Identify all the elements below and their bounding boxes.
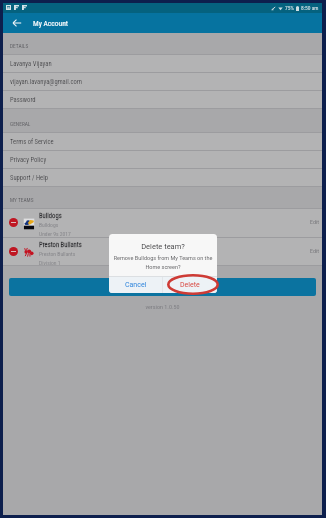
staticText: Preston Bullants <box>39 251 76 258</box>
staticText: Remove Bulldogs from My Teams on the Hom… <box>112 255 214 270</box>
button[interactable]: Privacy Policy <box>3 151 322 169</box>
button[interactable]: Remove team <box>9 247 18 256</box>
staticText: 75% <box>285 5 294 11</box>
staticText: Cancel <box>125 281 147 289</box>
staticText: DETAILS <box>10 43 29 49</box>
staticText: Division 1 <box>39 260 61 266</box>
staticText: Terms of Service <box>10 138 54 146</box>
staticText: Privacy Policy <box>10 156 47 164</box>
button[interactable]: Back <box>9 15 25 31</box>
button[interactable]: Remove team <box>3 209 322 238</box>
staticText: Edit <box>310 218 320 225</box>
staticText: Save <box>156 283 170 291</box>
staticText: Delete team? <box>109 242 217 251</box>
button[interactable]: Terms of Service <box>3 133 322 151</box>
staticText: Preston Bullants <box>39 241 82 249</box>
button[interactable]: Remove team <box>9 218 18 227</box>
button[interactable]: Remove team <box>3 238 322 266</box>
staticText: Lavanya Vijayan <box>10 60 52 68</box>
button[interactable]: Delete <box>163 277 217 293</box>
staticText: Under 9s 2017 <box>39 231 71 238</box>
staticText: Edit <box>310 247 320 254</box>
button[interactable]: vijayan.lavanya@gmail.com <box>3 73 322 91</box>
staticText: Bulldogs <box>39 222 59 229</box>
staticText: Delete <box>180 281 200 289</box>
staticText: 8:50 am <box>301 5 319 11</box>
button[interactable]: Save <box>9 278 316 296</box>
staticText: MY TEAMS <box>10 197 34 203</box>
staticText: vijayan.lavanya@gmail.com <box>10 78 82 86</box>
button[interactable]: Cancel <box>109 277 162 293</box>
button[interactable]: Password <box>3 91 322 109</box>
staticText: GENERAL <box>10 121 31 127</box>
staticText: My Account <box>33 19 69 28</box>
staticText: Password <box>10 96 36 104</box>
staticText: Bulldogs <box>39 212 62 220</box>
staticText: Support / Help <box>10 174 48 182</box>
button[interactable]: Lavanya Vijayan <box>3 55 322 73</box>
staticText: version 1.0.50 <box>3 303 322 310</box>
button[interactable]: Support / Help <box>3 169 322 187</box>
